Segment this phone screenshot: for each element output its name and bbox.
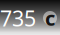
- staticText: 735: [0, 4, 36, 32]
- staticText: c: [45, 5, 55, 31]
